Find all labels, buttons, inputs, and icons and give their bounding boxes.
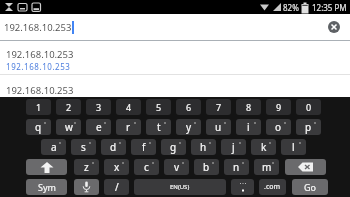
staticText: d (110, 140, 117, 154)
staticText: p (305, 120, 312, 134)
staticText: i (247, 120, 250, 134)
button[interactable]: g (161, 139, 186, 155)
button[interactable] (74, 179, 99, 195)
staticText: 192.168.10.253 (6, 61, 71, 72)
button[interactable]: b (194, 159, 219, 175)
staticText: a (51, 140, 57, 154)
button[interactable]: h (191, 139, 216, 155)
button[interactable]: 0 (296, 99, 321, 115)
button[interactable]: 8 (236, 99, 261, 115)
staticText: 1 (36, 101, 42, 113)
button[interactable]: t (146, 119, 171, 135)
staticText: f (142, 140, 146, 154)
button[interactable]: 6 (176, 99, 201, 115)
staticText: 4 (126, 101, 132, 113)
button[interactable]: y (176, 119, 201, 135)
button[interactable]: q (26, 119, 51, 135)
button[interactable]: 1 (26, 99, 51, 115)
staticText: Go (304, 181, 316, 193)
button[interactable]: 192.168.10.253 (6, 84, 74, 97)
button[interactable]: z (74, 159, 99, 175)
button[interactable]: Go (292, 179, 328, 195)
staticText: 3 (96, 101, 102, 113)
staticText: 12:35 PM (312, 2, 347, 13)
button[interactable]: c (134, 159, 159, 175)
button[interactable] (328, 21, 340, 33)
staticText: r (126, 120, 131, 134)
staticText: 5 (156, 101, 162, 113)
staticText: 82% (283, 2, 299, 13)
staticText: m (262, 160, 272, 174)
button[interactable] (26, 159, 67, 175)
staticText: 8 (246, 101, 252, 113)
button[interactable]: a (41, 139, 66, 155)
staticText: g (170, 140, 177, 154)
button[interactable]: .com (259, 179, 286, 195)
staticText: w (65, 120, 73, 134)
button[interactable]: f (131, 139, 156, 155)
staticText: n (233, 160, 240, 174)
staticText: k (261, 140, 267, 154)
button[interactable]: Sym (26, 179, 67, 195)
staticText: 192.168.10.253 (4, 21, 72, 34)
staticText: 7 (216, 101, 222, 113)
button[interactable]: s (71, 139, 96, 155)
button[interactable]: 4 (116, 99, 141, 115)
button[interactable]: m (254, 159, 279, 175)
button[interactable]: 9 (266, 99, 291, 115)
staticText: q (35, 120, 42, 134)
button[interactable] (285, 159, 326, 175)
staticText: 9 (276, 101, 282, 113)
staticText: h (200, 140, 207, 154)
button[interactable]: j (221, 139, 246, 155)
staticText: v (174, 160, 180, 174)
button[interactable]: i (236, 119, 261, 135)
staticText: 6 (186, 101, 192, 113)
staticText: c (144, 160, 149, 174)
button[interactable]: p (296, 119, 321, 135)
button[interactable]: EN(US) (134, 179, 226, 195)
button[interactable]: r (116, 119, 141, 135)
button[interactable]: n (224, 159, 249, 175)
button[interactable]: 192.168.10.253 (6, 48, 74, 61)
staticText: .com (264, 182, 281, 192)
button[interactable]: 5 (146, 99, 171, 115)
staticText: b (203, 160, 210, 174)
staticText: t (157, 120, 161, 134)
button[interactable] (231, 179, 254, 195)
button[interactable]: / (104, 179, 129, 195)
button[interactable]: e (86, 119, 111, 135)
staticText: 0 (306, 101, 312, 113)
button[interactable]: d (101, 139, 126, 155)
staticText: s (81, 140, 86, 154)
staticText: j (232, 140, 235, 154)
staticText: l (292, 140, 295, 154)
staticText: y (186, 120, 192, 134)
staticText: EN(US) (170, 183, 190, 191)
button[interactable]: 7 (206, 99, 231, 115)
button[interactable]: l (281, 139, 306, 155)
button[interactable]: 3 (86, 99, 111, 115)
button[interactable]: w (56, 119, 81, 135)
staticText: e (96, 120, 102, 134)
button[interactable]: k (251, 139, 276, 155)
staticText: Sym (38, 181, 56, 193)
button[interactable]: 2 (56, 99, 81, 115)
staticText: u (215, 120, 222, 134)
staticText: x (114, 160, 120, 174)
button[interactable]: u (206, 119, 231, 135)
button[interactable]: v (164, 159, 189, 175)
button[interactable]: o (266, 119, 291, 135)
staticText: o (275, 120, 282, 134)
staticText: 2 (66, 101, 72, 113)
staticText: z (84, 160, 89, 174)
button[interactable]: x (104, 159, 129, 175)
staticText: / (115, 180, 119, 194)
